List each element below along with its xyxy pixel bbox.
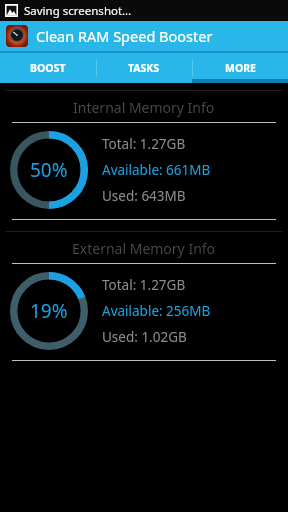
staticText: BOOST: [30, 61, 66, 75]
button[interactable]: BOOST: [0, 53, 96, 83]
staticText: Available: 256MB: [102, 302, 211, 320]
button[interactable]: External Memory Info: [4, 231, 284, 361]
button[interactable]: MORE: [192, 53, 288, 83]
staticText: MORE: [225, 61, 256, 75]
staticText: Used: 1.02GB: [102, 328, 187, 346]
staticText: Clean RAM Speed Booster: [36, 26, 213, 46]
staticText: Total: 1.27GB: [102, 135, 186, 153]
other: Screenshot: [5, 4, 18, 17]
staticText: 19%: [30, 298, 68, 324]
button[interactable]: TASKS: [96, 53, 192, 83]
staticText: External Memory Info: [72, 239, 216, 258]
staticText: Internal Memory Info: [73, 98, 215, 117]
staticText: Total: 1.27GB: [102, 276, 186, 294]
staticText: 50%: [30, 157, 68, 183]
button[interactable]: Internal Memory Info: [4, 90, 284, 220]
staticText: Used: 643MB: [102, 187, 186, 205]
staticText: Saving screenshot…: [24, 3, 132, 19]
staticText: Available: 661MB: [102, 161, 211, 179]
staticText: TASKS: [128, 61, 160, 75]
